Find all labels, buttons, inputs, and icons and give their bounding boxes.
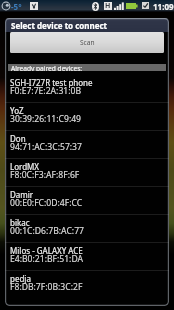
- staticText: pedja: [10, 273, 31, 284]
- staticText: 11:09: [153, 1, 174, 12]
- staticText: LordMX: [10, 161, 40, 172]
- button[interactable]: YoZ: [5, 102, 169, 130]
- button[interactable]: bikac: [5, 214, 169, 242]
- button[interactable]: Don: [5, 130, 169, 158]
- staticText: SGH-I727R test phone: [10, 77, 93, 88]
- staticText: Scan: [80, 38, 95, 47]
- staticText: -5°: [11, 1, 22, 12]
- staticText: YoZ: [10, 105, 24, 116]
- staticText: 30:39:26:11:C9:49: [10, 113, 82, 125]
- button[interactable]: Scan: [10, 32, 164, 53]
- staticText: E4:B0:21:BF:51:DA: [10, 253, 84, 265]
- staticText: 00:1C:D6:7B:AC:77: [10, 225, 84, 237]
- staticText: Don: [10, 133, 26, 144]
- staticText: F8:DB:7F:0B:3C:2F: [10, 281, 83, 293]
- button[interactable]: Damir: [5, 186, 169, 214]
- button[interactable]: Milos - GALAXY ACE: [5, 242, 169, 270]
- staticText: Select device to connect: [11, 20, 108, 31]
- staticText: 94:71:AC:3C:57:37: [10, 141, 82, 153]
- button[interactable]: SGH-I727R test phone: [5, 74, 169, 102]
- staticText: Already paired devices:: [11, 64, 83, 71]
- staticText: Damir: [10, 189, 34, 200]
- button[interactable]: LordMX: [5, 158, 169, 186]
- staticText: F0:E7:7E:2A:31:0B: [10, 85, 82, 97]
- button[interactable]: pedja: [5, 270, 169, 298]
- staticText: Milos - GALAXY ACE: [10, 245, 83, 256]
- staticText: F8:0C:F3:AF:8F:6F: [10, 169, 80, 181]
- staticText: H: [105, 1, 111, 9]
- staticText: bikac: [10, 217, 30, 228]
- staticText: 00:E0:FC:0D:4F:CC: [10, 197, 83, 209]
